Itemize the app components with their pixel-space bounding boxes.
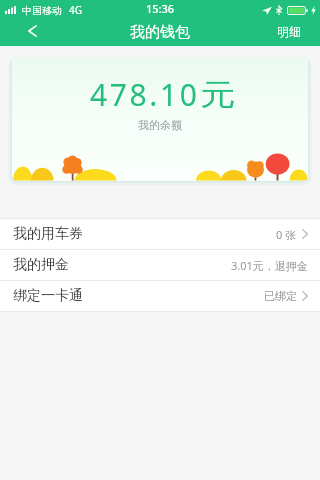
button[interactable]: 我的用车券 bbox=[0, 219, 320, 249]
staticText: 我的押金 bbox=[13, 256, 69, 274]
button[interactable]: Back bbox=[0, 18, 64, 46]
staticText: 明细 bbox=[277, 24, 301, 39]
staticText: 我的钱包 bbox=[130, 23, 190, 42]
button[interactable]: 明细 bbox=[258, 18, 320, 46]
staticText: 3.01元，退押金 bbox=[231, 258, 308, 273]
staticText: 我的余额 bbox=[138, 118, 182, 132]
staticText: 中国移动 bbox=[22, 4, 62, 17]
button[interactable]: 我的押金 bbox=[0, 250, 320, 280]
staticText: 4G bbox=[69, 3, 82, 17]
staticText: 已绑定 bbox=[264, 289, 297, 303]
staticText: 绑定一卡通 bbox=[13, 287, 83, 305]
button[interactable]: 绑定一卡通 bbox=[0, 281, 320, 311]
staticText: 0 张 bbox=[276, 227, 297, 242]
staticText: 15:36 bbox=[146, 1, 175, 16]
staticText: 478.10 bbox=[90, 74, 200, 115]
staticText: 我的用车券 bbox=[13, 225, 83, 243]
staticText: 元 bbox=[200, 76, 235, 114]
